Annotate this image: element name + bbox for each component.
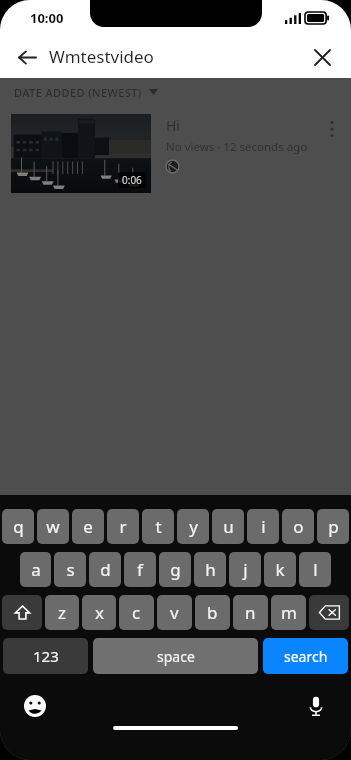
button[interactable]: k bbox=[264, 552, 296, 587]
staticText: n bbox=[245, 601, 256, 624]
staticText: t bbox=[155, 515, 162, 538]
button[interactable]: y bbox=[177, 509, 209, 544]
staticText: z bbox=[58, 601, 66, 624]
staticText: e bbox=[83, 515, 93, 538]
button[interactable]: space bbox=[93, 638, 258, 674]
staticText: r bbox=[119, 515, 127, 538]
staticText: p bbox=[328, 515, 339, 538]
staticText: w bbox=[46, 515, 60, 538]
button[interactable]: e bbox=[72, 509, 104, 544]
button[interactable]: h bbox=[194, 552, 226, 587]
button[interactable]: Close bbox=[305, 40, 339, 74]
staticText: b bbox=[207, 601, 218, 624]
button[interactable]: j bbox=[229, 552, 261, 587]
button[interactable]: m bbox=[271, 595, 306, 630]
button[interactable]: v bbox=[157, 595, 192, 630]
staticText: h bbox=[205, 558, 216, 581]
staticText: DATE ADDED (NEWEST) bbox=[14, 85, 142, 100]
button[interactable]: s bbox=[54, 552, 86, 587]
staticText: f bbox=[137, 558, 143, 581]
staticText: space bbox=[157, 647, 195, 666]
staticText: x bbox=[95, 601, 104, 624]
button[interactable]: 0:06 bbox=[0, 106, 351, 198]
staticText: 123 bbox=[33, 646, 59, 666]
button[interactable]: u bbox=[212, 509, 244, 544]
button[interactable]: f bbox=[124, 552, 156, 587]
button[interactable]: r bbox=[107, 509, 139, 544]
staticText: No views · 12 seconds ago bbox=[166, 139, 308, 155]
staticText: search bbox=[284, 647, 328, 666]
staticText: a bbox=[31, 558, 41, 581]
button[interactable]: p bbox=[317, 509, 349, 544]
staticText: d bbox=[100, 558, 111, 581]
button[interactable]: x bbox=[82, 595, 116, 630]
button[interactable]: Voice input bbox=[301, 691, 331, 721]
button[interactable]: search bbox=[263, 638, 348, 674]
button[interactable]: g bbox=[159, 552, 191, 587]
button[interactable]: n bbox=[233, 595, 268, 630]
staticText: u bbox=[223, 515, 234, 538]
button[interactable]: o bbox=[282, 509, 314, 544]
staticText: y bbox=[189, 515, 198, 538]
staticText: v bbox=[170, 601, 179, 624]
staticText: 0:06 bbox=[122, 173, 142, 187]
button[interactable]: z bbox=[45, 595, 79, 630]
button[interactable]: Emoji bbox=[20, 691, 50, 721]
staticText: g bbox=[170, 558, 181, 581]
staticText: m bbox=[281, 601, 297, 624]
button[interactable]: w bbox=[37, 509, 69, 544]
staticText: j bbox=[243, 558, 248, 581]
button[interactable]: i bbox=[247, 509, 279, 544]
button[interactable]: DATE ADDED (NEWEST) bbox=[0, 78, 351, 106]
staticText: Hi bbox=[166, 116, 180, 135]
button[interactable]: t bbox=[142, 509, 174, 544]
button[interactable]: Back bbox=[10, 40, 44, 74]
staticText: c bbox=[132, 601, 141, 624]
button[interactable]: c bbox=[119, 595, 154, 630]
button[interactable]: 123 bbox=[3, 638, 88, 674]
button[interactable]: b bbox=[195, 595, 230, 630]
staticText: s bbox=[66, 558, 75, 581]
staticText: 10:00 bbox=[30, 9, 64, 27]
button[interactable]: Backspace bbox=[309, 595, 349, 630]
staticText: o bbox=[293, 515, 304, 538]
staticText: Wmtestvideo bbox=[49, 45, 305, 68]
button[interactable]: q bbox=[2, 509, 34, 544]
staticText: k bbox=[275, 558, 285, 581]
button[interactable]: a bbox=[20, 552, 51, 587]
button[interactable]: l bbox=[299, 552, 331, 587]
staticText: l bbox=[313, 558, 318, 581]
staticText: q bbox=[13, 515, 24, 538]
staticText: i bbox=[261, 515, 266, 538]
button[interactable]: d bbox=[89, 552, 121, 587]
button[interactable]: More options bbox=[317, 114, 347, 144]
button[interactable]: Shift bbox=[2, 595, 42, 630]
